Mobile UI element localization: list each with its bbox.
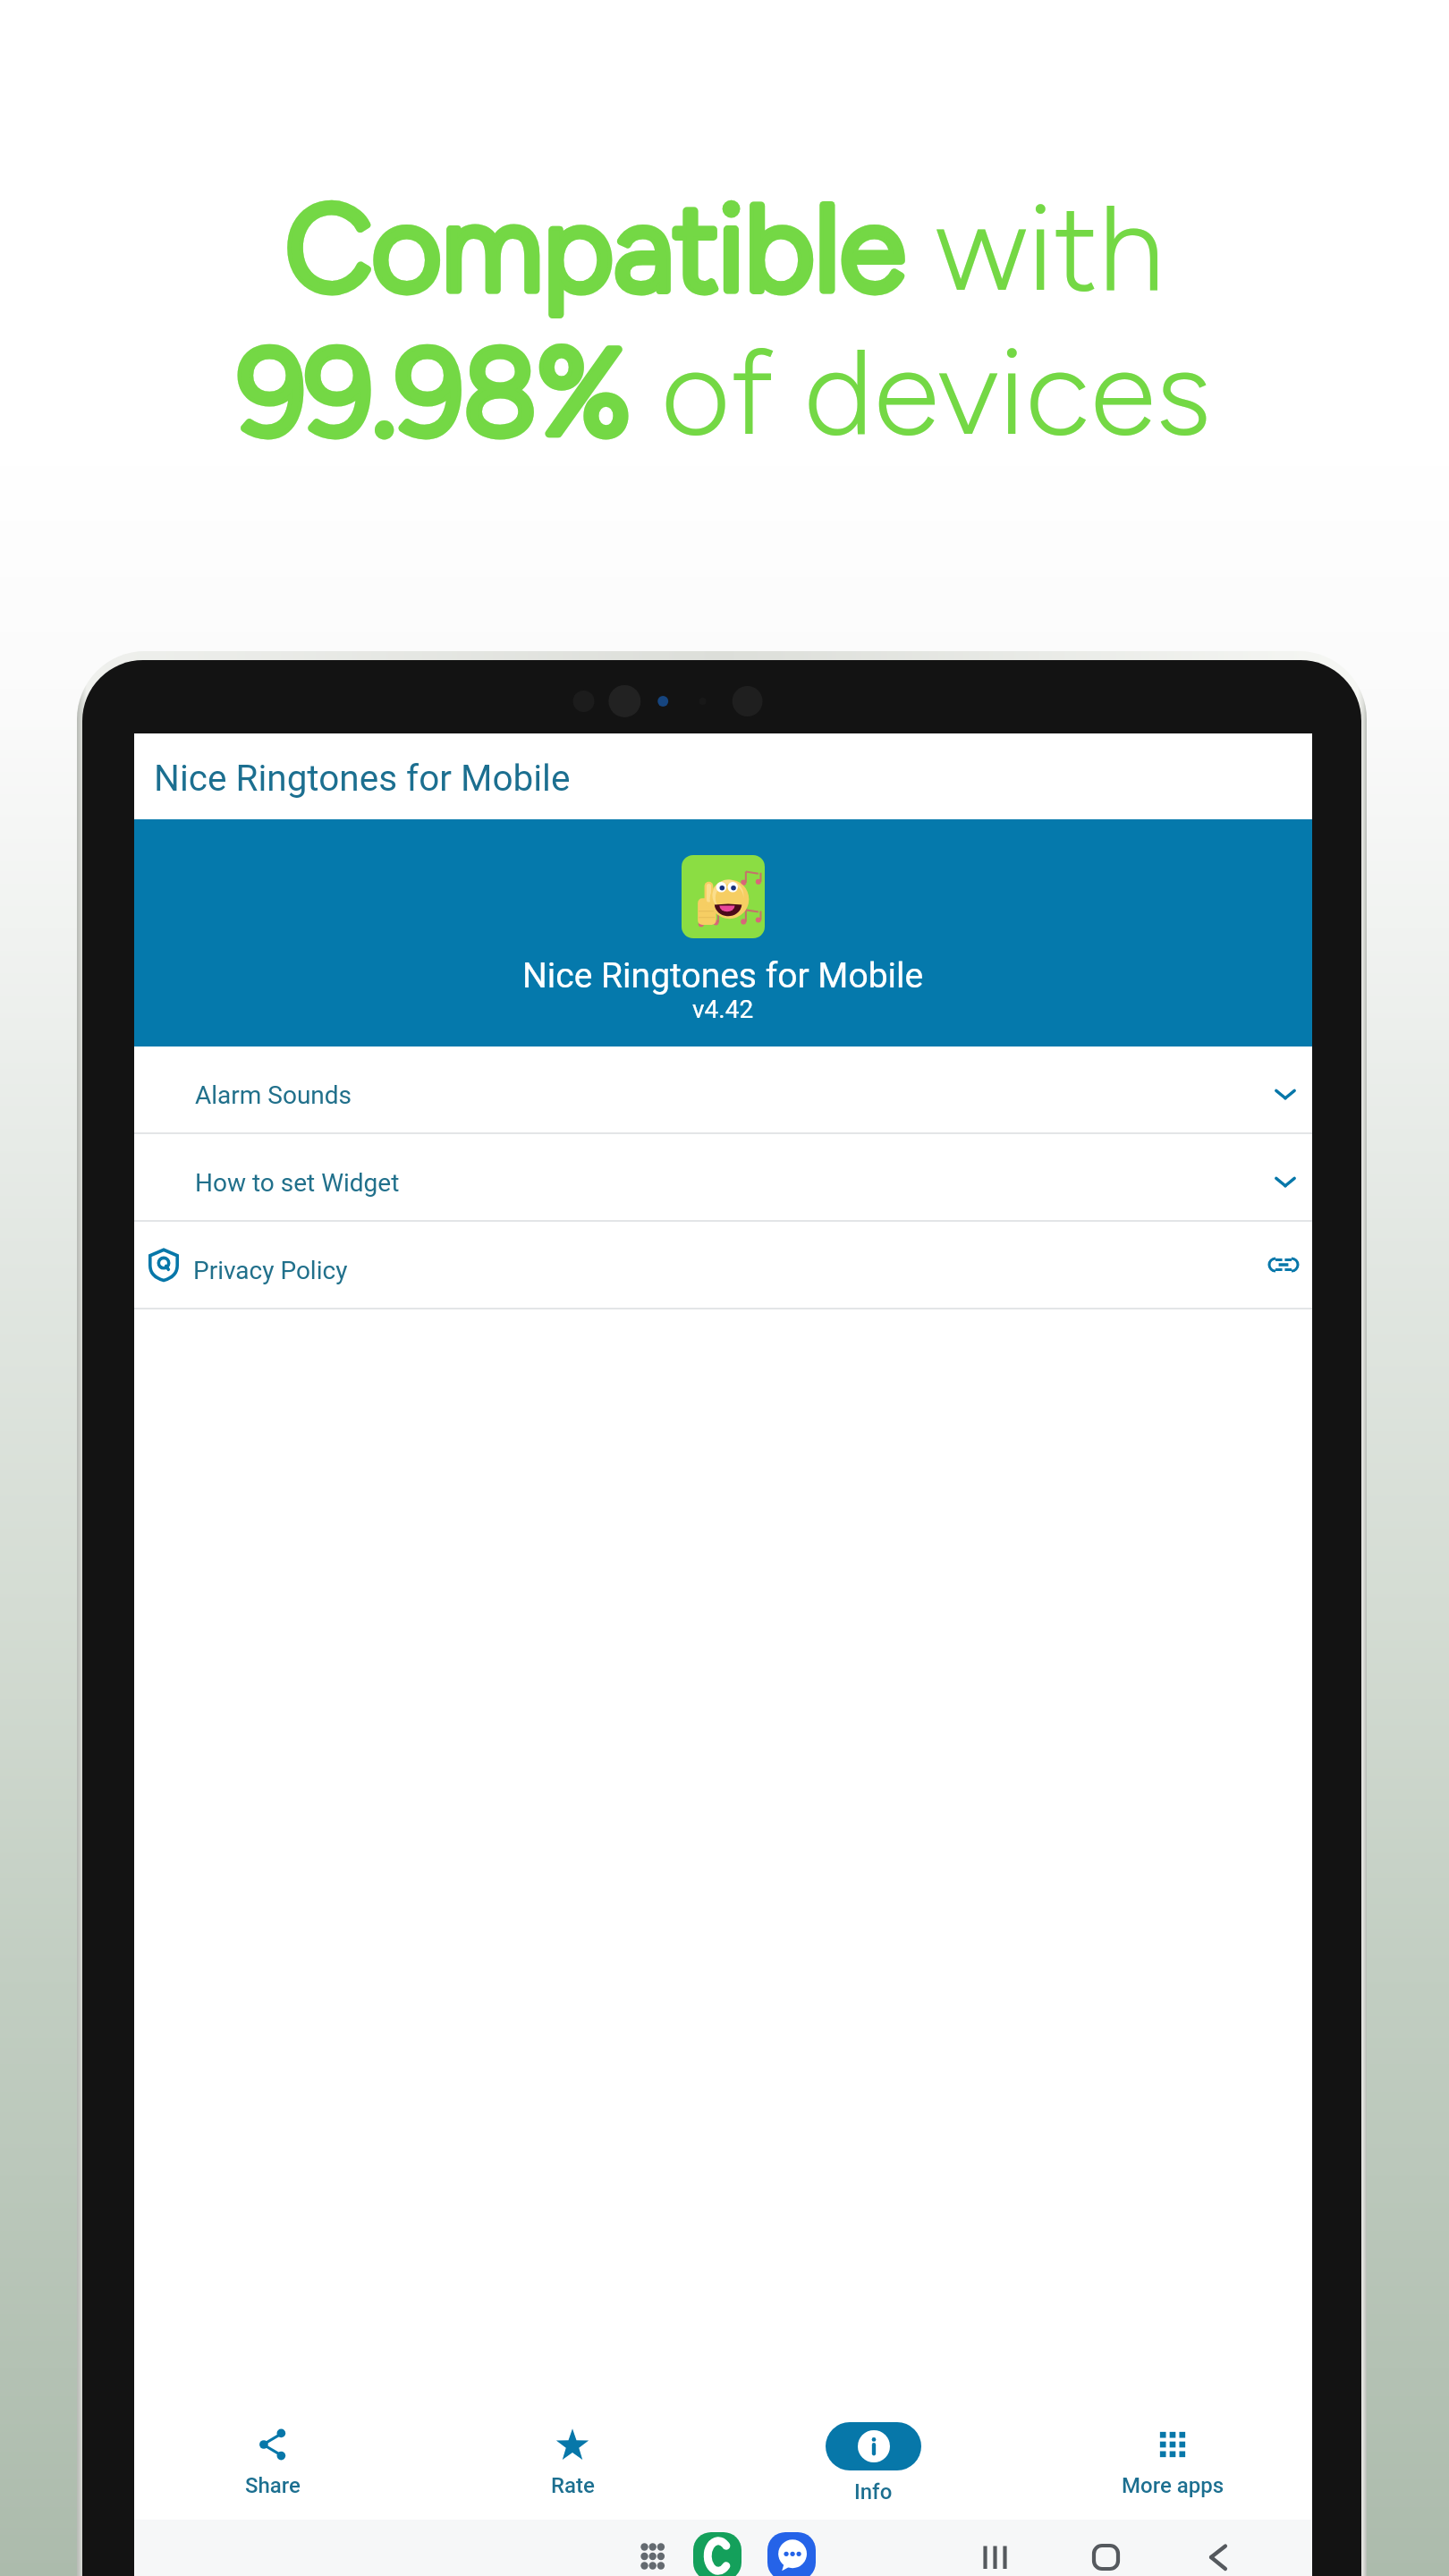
staticText: More apps: [1122, 2473, 1224, 2498]
staticText: 99.98%: [238, 319, 631, 463]
staticText: Nice Ringtones for Mobile: [522, 955, 924, 996]
button[interactable]: More apps: [1074, 2417, 1271, 2538]
staticText: Share: [245, 2473, 301, 2498]
staticText: Alarm Sounds: [195, 1080, 352, 1110]
staticText: Info: [854, 2479, 893, 2504]
button[interactable]: Share: [174, 2417, 371, 2538]
staticText: Compatible: [285, 175, 905, 319]
staticText: with: [905, 175, 1165, 319]
staticText: 99.98%: [238, 319, 631, 463]
staticText: Rate: [551, 2473, 595, 2498]
button[interactable]: How to set Widget: [134, 1134, 1312, 1220]
staticText: of devices: [631, 319, 1212, 463]
staticText: Compatible: [285, 175, 905, 319]
staticText: v4.42: [692, 995, 754, 1024]
button[interactable]: Alarm Sounds: [134, 1046, 1312, 1132]
staticText: Privacy Policy: [193, 1256, 348, 1285]
button[interactable]: Rate: [474, 2417, 671, 2538]
button[interactable]: Info: [775, 2417, 971, 2538]
staticText: How to set Widget: [195, 1168, 400, 1198]
staticText: Nice Ringtones for Mobile: [154, 757, 571, 799]
button[interactable]: Privacy Policy: [134, 1222, 1312, 1308]
